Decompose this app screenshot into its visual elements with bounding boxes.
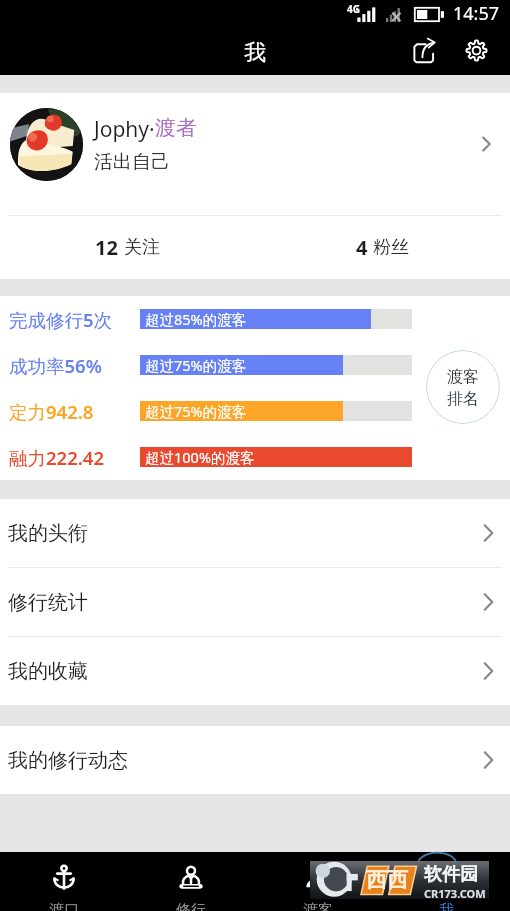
- staticText: 完成修行5次: [9, 307, 113, 332]
- staticText: 4G: [347, 2, 360, 16]
- staticText: 渡者: [155, 115, 197, 141]
- button[interactable]: 4: [255, 216, 510, 279]
- staticText: 渡客 排名: [447, 367, 479, 408]
- staticText: 定力942.8: [9, 399, 94, 424]
- staticText: 超过85%的渡客: [145, 309, 247, 329]
- button[interactable]: 修行: [127, 852, 254, 911]
- staticText: 我的头衔: [8, 521, 481, 546]
- staticText: 4: [356, 234, 373, 261]
- staticText: Jophy·: [94, 115, 155, 144]
- staticText: 渡客: [303, 901, 333, 911]
- staticText: 我的修行动态: [8, 748, 481, 773]
- staticText: 软件园: [424, 863, 478, 886]
- staticText: 成功率56%: [9, 353, 102, 378]
- staticText: 14:57: [453, 1, 500, 26]
- button[interactable]: Share: [402, 30, 446, 71]
- button[interactable]: 渡客: [254, 852, 382, 911]
- staticText: 西西: [366, 867, 408, 893]
- staticText: 渡口: [49, 901, 79, 911]
- staticText: 超过100%的渡客: [145, 447, 255, 467]
- staticText: 我: [439, 901, 454, 911]
- staticText: 超过75%的渡客: [145, 355, 247, 375]
- button[interactable]: 我的头衔: [0, 499, 510, 567]
- staticText: 粉丝: [373, 236, 409, 259]
- staticText: 我: [244, 39, 266, 67]
- staticText: 修行统计: [8, 590, 481, 615]
- button[interactable]: 渡口: [0, 852, 127, 911]
- staticText: 超过75%的渡客: [145, 401, 247, 421]
- button[interactable]: 我的修行动态: [0, 726, 510, 794]
- staticText: CR173.COM: [424, 886, 486, 901]
- button[interactable]: Settings: [454, 30, 498, 71]
- staticText: 融力222.42: [9, 445, 105, 470]
- button[interactable]: 12: [0, 216, 255, 279]
- staticText: 修行: [176, 901, 206, 911]
- button[interactable]: 我的收藏: [0, 637, 510, 705]
- staticText: 关注: [124, 236, 160, 259]
- button[interactable]: 我: [382, 852, 510, 911]
- button[interactable]: 修行统计: [0, 568, 510, 636]
- button[interactable]: Jophy·: [0, 93, 510, 215]
- staticText: 活出自己: [94, 150, 170, 174]
- staticText: 我的收藏: [8, 659, 481, 684]
- button[interactable]: 渡客 排名: [426, 350, 500, 424]
- staticText: 12: [95, 234, 124, 261]
